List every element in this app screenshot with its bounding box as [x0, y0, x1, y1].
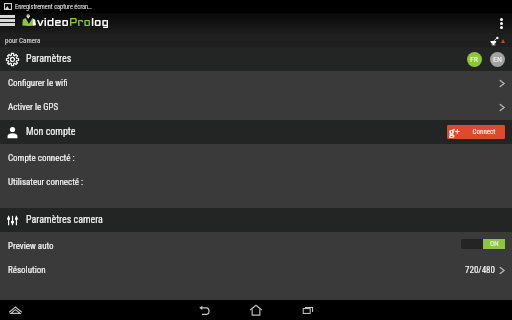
staticText: Compte connecté :	[8, 153, 75, 164]
staticText: pour Camera	[5, 37, 41, 45]
staticText: ON	[490, 240, 499, 248]
staticText: video	[37, 17, 69, 28]
button[interactable]: FR	[467, 52, 482, 67]
staticText: Configurer le wifi	[8, 78, 68, 89]
button[interactable]: Activer le GPS	[0, 95, 512, 119]
button[interactable]: Preview auto	[0, 234, 512, 258]
button[interactable]: Show navigation	[7, 302, 23, 318]
staticText: Résolution	[8, 265, 46, 276]
staticText: Utilisateur connecté :	[8, 177, 84, 188]
staticText: g+	[449, 125, 461, 139]
button[interactable]: g+	[447, 125, 505, 139]
staticText: Connect	[463, 128, 505, 136]
button[interactable]: Recent apps	[293, 300, 323, 320]
button[interactable]: Menu	[0, 10, 15, 31]
button[interactable]: Home	[241, 300, 271, 320]
button[interactable]: GPS status	[490, 37, 505, 45]
staticText: FR	[470, 55, 479, 64]
staticText: Pro	[69, 17, 91, 28]
button[interactable]: EN	[490, 52, 505, 67]
button[interactable]: Utilisateur connecté :	[0, 170, 512, 194]
staticText: log	[91, 17, 109, 28]
button[interactable]: Compte connecté :	[0, 146, 512, 170]
staticText: Paramètres	[26, 53, 72, 65]
button[interactable]: Back	[189, 300, 219, 320]
staticText: Enregistrement capture écran…	[15, 3, 92, 10]
staticText: EN	[493, 55, 502, 64]
staticText: Preview auto	[8, 241, 54, 252]
button[interactable]: Configurer le wifi	[0, 71, 512, 95]
staticText: Paramètres camera	[26, 214, 103, 226]
staticText: 720/480	[465, 265, 495, 276]
button[interactable]: More options	[490, 13, 512, 34]
staticText: Activer le GPS	[8, 102, 59, 113]
staticText: Mon compte	[26, 126, 76, 138]
button[interactable]: Résolution	[0, 258, 512, 282]
